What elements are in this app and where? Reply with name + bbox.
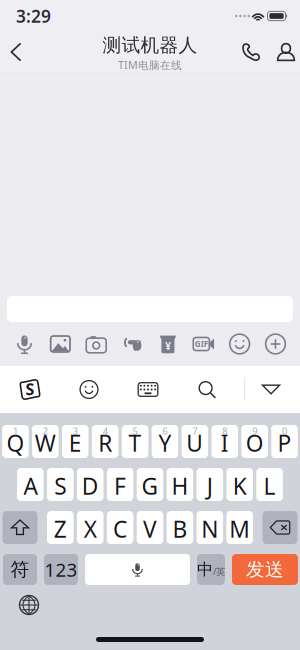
staticText: F xyxy=(114,471,126,501)
staticText: 3:29 xyxy=(16,4,51,27)
staticText: 4 xyxy=(103,425,108,437)
button[interactable]: Camera xyxy=(82,331,111,357)
button[interactable]: F xyxy=(107,468,133,501)
button[interactable]: D xyxy=(77,468,103,501)
button[interactable]: Delete xyxy=(262,511,297,544)
button[interactable]: 中 xyxy=(197,554,225,585)
button[interactable]: M xyxy=(226,511,253,544)
button[interactable]: Switch keyboard xyxy=(9,591,49,619)
button[interactable]: Profile xyxy=(273,32,299,72)
staticText: V xyxy=(143,514,157,544)
button[interactable]: 2 xyxy=(32,425,59,458)
staticText: 7 xyxy=(192,425,197,437)
staticText: 9 xyxy=(252,425,257,437)
button[interactable]: GIF xyxy=(189,331,218,357)
staticText: 1 xyxy=(13,425,18,437)
staticText: M xyxy=(229,514,250,544)
button[interactable]: 6 xyxy=(152,425,178,458)
staticText: 发送 xyxy=(246,558,284,581)
staticText: H xyxy=(171,471,188,501)
button[interactable]: Photos xyxy=(46,331,75,357)
staticText: A xyxy=(23,471,37,501)
button[interactable]: C xyxy=(107,511,133,544)
staticText: S xyxy=(54,471,66,501)
button[interactable]: Keyboard layout xyxy=(126,369,170,409)
button[interactable]: Search xyxy=(185,369,229,409)
staticText: GIF xyxy=(195,339,208,349)
staticText: J xyxy=(207,471,213,501)
staticText: L xyxy=(264,471,276,501)
button[interactable]: X xyxy=(77,511,103,544)
button[interactable]: 发送 xyxy=(232,554,298,585)
staticText: X xyxy=(84,514,97,544)
button[interactable]: Input method xyxy=(8,369,52,409)
staticText: D xyxy=(82,471,99,501)
staticText: 测试机器人 xyxy=(102,34,197,57)
staticText: C xyxy=(113,514,127,544)
staticText: I xyxy=(221,428,229,458)
staticText: Y xyxy=(158,428,171,458)
button[interactable]: 7 xyxy=(182,425,208,458)
staticText: 3 xyxy=(73,425,78,437)
button[interactable]: V xyxy=(137,511,163,544)
button[interactable]: 3 xyxy=(62,425,89,458)
button[interactable]: 9 xyxy=(241,425,268,458)
button[interactable]: More xyxy=(261,331,290,357)
staticText: B xyxy=(172,514,187,544)
button[interactable]: G xyxy=(137,468,163,501)
staticText: Z xyxy=(54,514,67,544)
button[interactable]: K xyxy=(226,468,253,501)
staticText: TIM电脑在线 xyxy=(118,58,182,72)
staticText: ¥ xyxy=(165,339,171,353)
staticText: U xyxy=(186,428,203,458)
button[interactable]: 5 xyxy=(122,425,148,458)
staticText: Q xyxy=(6,428,24,458)
button[interactable]: 123 xyxy=(44,554,78,585)
button[interactable]: L xyxy=(256,468,283,501)
staticText: /英 xyxy=(213,565,225,578)
button[interactable]: N xyxy=(196,511,223,544)
staticText: O xyxy=(246,428,264,458)
staticText: 123 xyxy=(44,557,77,582)
staticText: G xyxy=(141,471,158,501)
staticText: 0 xyxy=(282,425,287,437)
button[interactable]: J xyxy=(196,468,223,501)
button[interactable]: 符 xyxy=(3,554,37,585)
staticText: 8 xyxy=(222,425,227,437)
button[interactable]: Emoji xyxy=(67,369,111,409)
button[interactable]: Back xyxy=(3,32,29,72)
staticText: R xyxy=(98,428,112,458)
staticText: 符 xyxy=(10,558,29,581)
button[interactable]: Shift xyxy=(2,511,37,544)
button[interactable]: Hide keyboard xyxy=(249,369,293,409)
button[interactable]: Voice message xyxy=(10,331,39,357)
staticText: S xyxy=(25,378,34,400)
button[interactable]: Red packet xyxy=(153,331,182,357)
staticText: 5 xyxy=(133,425,138,437)
button[interactable]: Voice call xyxy=(238,32,264,72)
staticText: W xyxy=(35,428,56,458)
staticText: 2 xyxy=(43,425,48,437)
button[interactable]: 4 xyxy=(92,425,118,458)
staticText: K xyxy=(233,471,247,501)
button[interactable]: 0 xyxy=(271,425,298,458)
button[interactable]: 8 xyxy=(211,425,238,458)
staticText: E xyxy=(69,428,82,458)
button[interactable]: S xyxy=(47,468,74,501)
button[interactable]: 1 xyxy=(2,425,29,458)
staticText: T xyxy=(129,428,142,458)
staticText: P xyxy=(278,428,292,458)
staticText: 6 xyxy=(162,425,167,437)
button[interactable]: H xyxy=(167,468,193,501)
staticText: N xyxy=(201,514,218,544)
button[interactable]: A xyxy=(17,468,44,501)
button[interactable]: Space xyxy=(85,554,190,585)
button[interactable]: Emoji xyxy=(225,331,254,357)
button[interactable]: Poke xyxy=(118,331,147,357)
staticText: 中 xyxy=(197,560,213,579)
button[interactable]: B xyxy=(167,511,193,544)
button[interactable]: Z xyxy=(47,511,74,544)
